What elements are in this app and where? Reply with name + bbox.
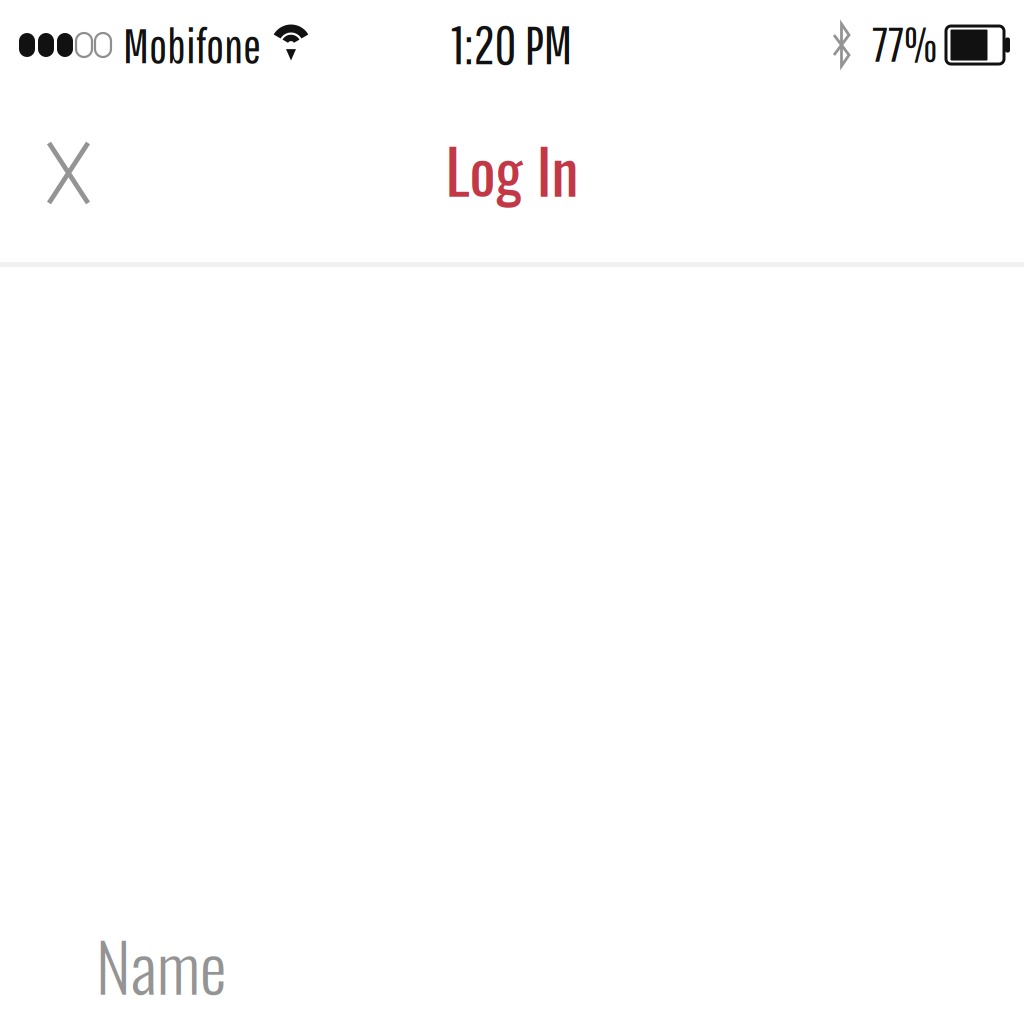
staticText: Name [96, 915, 226, 1014]
staticText: 77% [872, 16, 937, 71]
button[interactable]: Name [0, 915, 1024, 1024]
button[interactable]: Close [0, 119, 122, 233]
staticText: Mobifone [123, 17, 261, 73]
staticText: 1:20 PM [451, 13, 572, 75]
staticText: Log In [445, 124, 578, 214]
